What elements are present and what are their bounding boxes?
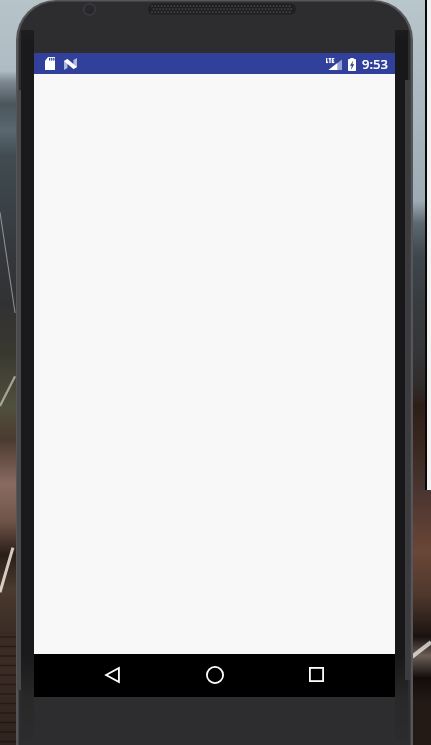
button[interactable]: Recent apps bbox=[296, 654, 336, 697]
staticText: 9:53 bbox=[362, 55, 388, 73]
button[interactable]: Home bbox=[194, 654, 235, 697]
button[interactable]: Back bbox=[92, 654, 132, 697]
